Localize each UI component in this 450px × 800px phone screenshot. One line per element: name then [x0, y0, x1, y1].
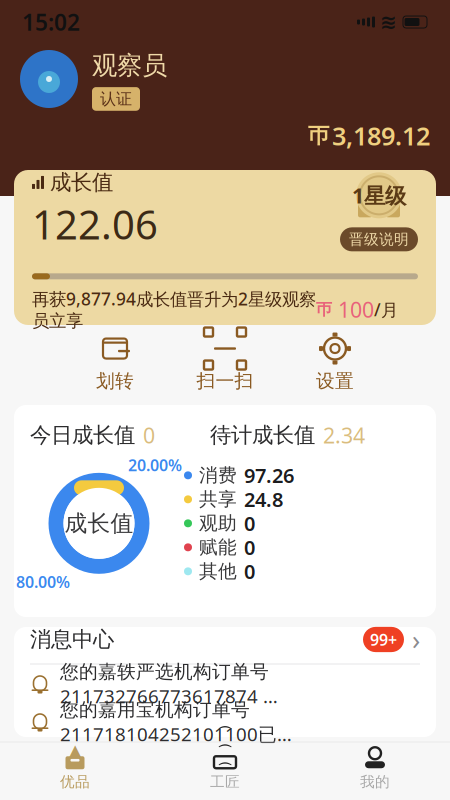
staticText: 您的嘉轶严选机构订单号 211732766773617874 … — [60, 659, 278, 708]
button[interactable]: ▲ — [0, 742, 150, 794]
button[interactable]: 晋级说明 — [340, 227, 418, 251]
button[interactable]: 划转 — [60, 331, 170, 397]
button[interactable]: 您的嘉用宝机构订单号 211718104252101100已… — [14, 702, 436, 740]
staticText: 今日成长值 — [30, 422, 135, 448]
staticText: 待计成长值 — [210, 422, 315, 448]
staticText: 成长值 — [64, 509, 133, 537]
staticText: /月 — [374, 298, 398, 321]
staticText: 0 — [244, 510, 255, 537]
button[interactable]: 您的嘉轶严选机构订单号 211732766773617874 … — [14, 664, 436, 702]
staticText: ≋ — [380, 11, 397, 33]
staticText: 您的嘉用宝机构订单号 211718104252101100已… — [60, 697, 292, 746]
staticText: 97.26 — [244, 462, 294, 489]
button[interactable]: 扫一扫 — [170, 331, 280, 397]
staticText: 0 — [143, 421, 155, 449]
staticText: 扫一扫 — [196, 369, 253, 392]
button[interactable]: 认证 — [92, 87, 140, 111]
button[interactable]: 消息中心 — [14, 615, 436, 663]
staticText: 划转 — [96, 369, 134, 392]
staticText: 3,189.12 — [332, 119, 430, 152]
staticText: 帀 — [308, 122, 329, 149]
staticText: 其他 — [199, 560, 237, 583]
button[interactable]: 设置 — [280, 331, 390, 397]
staticText: ▲ — [67, 740, 82, 763]
staticText: 成长值 — [50, 169, 113, 195]
staticText: 消息中心 — [30, 626, 114, 653]
staticText: 工匠 — [210, 773, 240, 791]
button[interactable]: ⌒⌒⌒ — [150, 742, 300, 794]
staticText: 15:02 — [22, 7, 80, 37]
staticText: 认证 — [100, 89, 132, 109]
staticText: 99+ — [370, 629, 397, 650]
staticText: 100 — [332, 295, 374, 324]
staticText: › — [412, 622, 420, 657]
staticText: 设置 — [316, 369, 354, 392]
staticText: 消费 — [199, 464, 237, 487]
button[interactable]: Coin balance — [308, 119, 430, 152]
staticText: 24.8 — [244, 486, 283, 513]
staticText: 帀 — [316, 300, 332, 319]
staticText: 1星级 — [352, 181, 406, 209]
staticText: 2.34 — [323, 421, 365, 449]
staticText: 0 — [244, 534, 255, 561]
staticText: 晋级说明 — [349, 230, 409, 248]
staticText: 共享 — [199, 488, 237, 511]
staticText: 0 — [244, 558, 255, 585]
staticText: 赋能 — [199, 536, 237, 559]
staticText: 观助 — [199, 512, 237, 535]
staticText: 观察员 — [92, 50, 167, 81]
button[interactable]: 我的 — [300, 742, 450, 794]
staticText: 优品 — [60, 773, 90, 791]
staticText: ⌒⌒⌒ — [217, 725, 232, 779]
staticText: 我的 — [360, 773, 390, 791]
button[interactable]: Profile photo — [20, 50, 78, 108]
staticText: 122.06 — [32, 197, 158, 251]
staticText: 20.00% — [128, 454, 182, 475]
staticText: 80.00% — [16, 571, 70, 592]
staticText: 再获9,877.94成长值晋升为2星级观察员立享 — [32, 287, 316, 332]
